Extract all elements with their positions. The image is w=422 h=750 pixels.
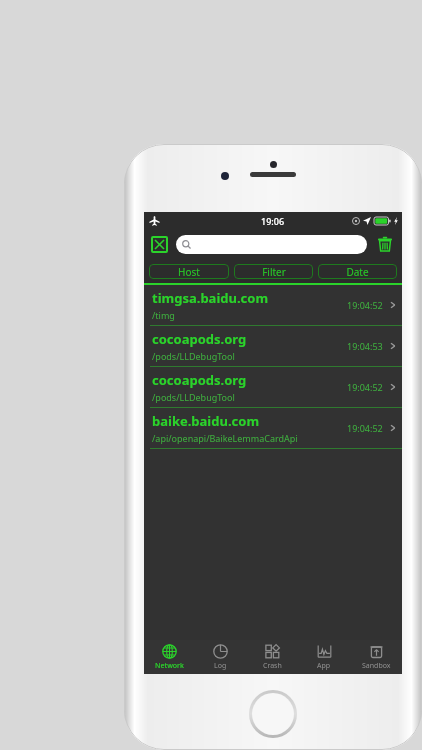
staticText: Network — [155, 661, 184, 671]
button[interactable]: cocoapods.org — [144, 367, 402, 407]
staticText: 19:04:52 — [347, 422, 383, 434]
staticText: Sandbox — [362, 661, 391, 671]
staticText: /timg — [152, 309, 175, 321]
staticText: 19:04:52 — [347, 299, 383, 311]
staticText: Crash — [263, 661, 282, 671]
staticText: cocoapods.org — [152, 330, 247, 348]
button[interactable]: App — [298, 640, 350, 674]
button[interactable]: Filter — [234, 264, 313, 279]
staticText: cocoapods.org — [152, 371, 247, 389]
button[interactable]: baike.baidu.com — [144, 408, 402, 448]
button[interactable]: cocoapods.org — [144, 326, 402, 366]
staticText: 19:06 — [261, 215, 285, 227]
staticText: baike.baidu.com — [152, 412, 260, 430]
button[interactable]: Log — [195, 640, 246, 674]
button[interactable]: timgsa.baidu.com — [144, 285, 402, 325]
button[interactable] — [176, 235, 367, 254]
staticText: Filter — [262, 265, 286, 279]
staticText: /pods/LLDebugTool — [152, 391, 235, 403]
button[interactable]: Network — [144, 640, 195, 674]
staticText: App — [317, 661, 331, 671]
staticText: /pods/LLDebugTool — [152, 350, 235, 362]
staticText: Log — [214, 661, 227, 671]
staticText: Date — [346, 265, 369, 279]
button[interactable]: Close — [151, 236, 168, 253]
staticText: /api/openapi/BaikeLemmaCardApi — [152, 432, 298, 444]
staticText: 19:04:52 — [347, 381, 383, 393]
button[interactable]: Sandbox — [350, 640, 402, 674]
button[interactable]: Crash — [246, 640, 298, 674]
button[interactable]: Host — [149, 264, 229, 279]
staticText: 19:04:53 — [347, 340, 383, 352]
staticText: timgsa.baidu.com — [152, 289, 269, 307]
button[interactable]: Delete all — [375, 234, 395, 254]
button[interactable]: Date — [318, 264, 397, 279]
staticText: Host — [178, 265, 200, 279]
